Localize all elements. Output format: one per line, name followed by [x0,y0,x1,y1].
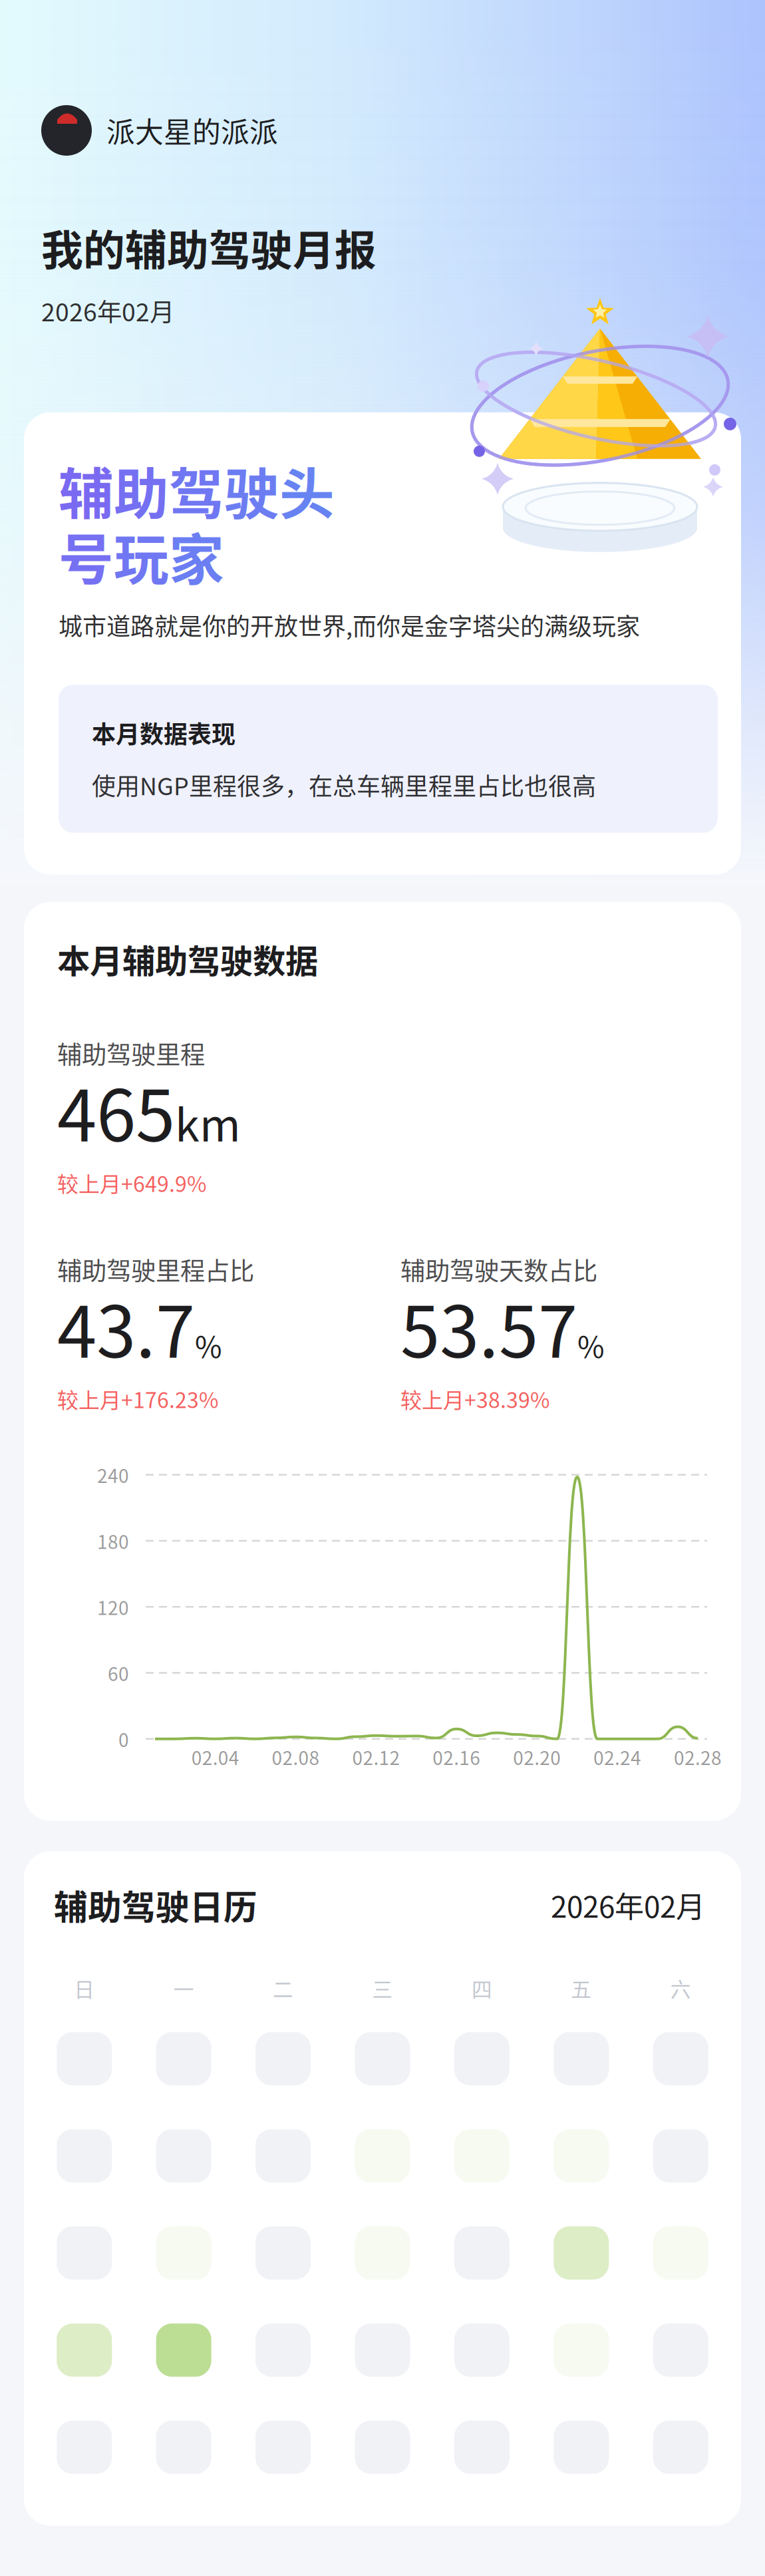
staticText: 60 [108,1659,129,1686]
staticText: 家 [169,516,224,596]
staticText: 使用NGP里程很多，在总车辆里程里占比也很高 [92,767,596,802]
staticText: 02.08 [272,1743,320,1770]
staticText: km [175,1090,241,1154]
staticText: 本月辅助驾驶数据 [57,935,318,983]
staticText: 辅助驾驶天数占比 [400,1251,597,1287]
staticText: 02.20 [513,1743,561,1770]
staticText: 派大星的派派 [106,110,278,151]
staticText: 02.16 [433,1743,480,1770]
staticText: 二 [273,1973,293,2003]
staticText: 180 [97,1527,129,1554]
staticText: 02.24 [593,1743,641,1770]
staticText: 助 [114,450,169,530]
staticText: % [195,1324,222,1366]
staticText: 0 [118,1725,129,1752]
staticText: 120 [97,1593,129,1620]
staticText: 53.57 [400,1275,577,1378]
staticText: 号 [59,516,114,596]
staticText: 2026年02月 [41,293,174,329]
staticText: 玩 [114,516,169,596]
staticText: 43.7 [57,1275,195,1378]
staticText: 240 [97,1461,129,1488]
staticText: 辅 [59,450,114,530]
staticText: 头 [279,450,335,530]
staticText: 较上月+649.9% [57,1167,206,1198]
staticText: 四 [472,1973,492,2003]
staticText: % [577,1324,605,1366]
staticText: 较上月+38.39% [400,1383,549,1414]
staticText: 我的辅助驾驶月报 [41,217,377,277]
staticText: 城市道路就是你的开放世界,而你是金字塔尖的满级玩家 [59,608,640,642]
staticText: 日 [74,1973,95,2003]
staticText: 辅助驾驶里程占比 [57,1251,254,1287]
staticText: 02.12 [352,1743,400,1770]
staticText: 辅助驾驶日历 [54,1881,257,1929]
staticText: 驾 [169,450,224,530]
staticText: 较上月+176.23% [57,1383,218,1414]
staticText: 五 [571,1973,592,2003]
staticText: 02.04 [191,1743,239,1770]
staticText: 三 [372,1973,393,2003]
staticText: 02.28 [674,1743,722,1770]
staticText: 465 [57,1059,175,1162]
staticText: 辅助驾驶里程 [57,1035,205,1071]
staticText: 2026年02月 [551,1884,705,1926]
button[interactable]: 派大星的派派 [41,105,278,156]
staticText: 驶 [224,450,279,530]
staticText: 六 [670,1973,691,2003]
staticText: 本月数据表现 [92,715,235,750]
staticText: 一 [173,1973,194,2003]
